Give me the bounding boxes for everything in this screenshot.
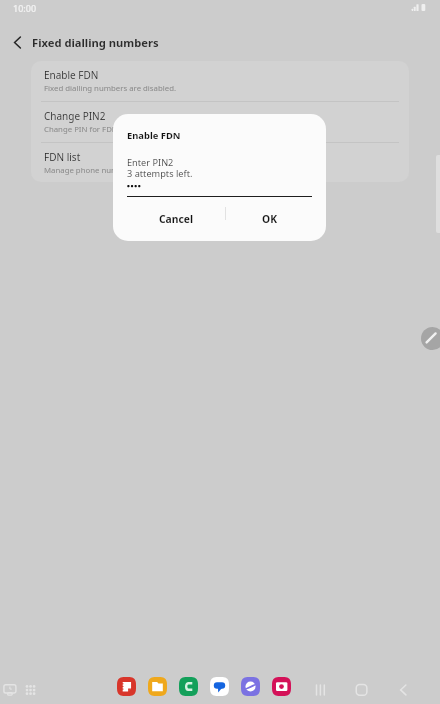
button[interactable]: Phone: [179, 677, 198, 696]
button[interactable]: Samsung Notes: [117, 677, 136, 696]
staticText: FDN list: [44, 150, 81, 164]
button[interactable]: Internet: [241, 677, 260, 696]
staticText: Manage phone numbers: [44, 165, 135, 176]
staticText: Enable FDN: [127, 129, 181, 142]
staticText: Enable FDN: [44, 68, 99, 82]
button[interactable]: Navigate up: [4, 29, 30, 55]
staticText: Change PIN for FDN: [44, 124, 118, 135]
button[interactable]: Recents: [2, 680, 18, 696]
button[interactable]: Home: [351, 680, 372, 701]
staticText: 10:00: [13, 2, 37, 14]
button[interactable]: Messages: [210, 677, 229, 696]
staticText: OK: [262, 212, 277, 226]
staticText: Cancel: [159, 212, 194, 226]
staticText: Fixed dialling numbers: [32, 35, 159, 50]
button[interactable]: Cancel: [113, 201, 225, 236]
staticText: Change PIN2: [44, 109, 106, 123]
button[interactable]: All apps: [23, 680, 39, 696]
button[interactable]: Back: [392, 680, 413, 701]
button[interactable]: S Pen: [421, 327, 440, 350]
button[interactable]: Recent apps: [310, 680, 330, 700]
staticText: Fixed dialling numbers are disabled.: [44, 83, 177, 94]
button[interactable]: Enable FDN: [31, 61, 409, 101]
button[interactable]: FDN list: [31, 143, 409, 182]
staticText: 3 attempts left.: [127, 167, 193, 180]
button[interactable]: Change PIN2: [31, 102, 409, 142]
button[interactable]: OK: [226, 201, 326, 236]
button[interactable]: My Files: [148, 677, 167, 696]
button[interactable]: Camera: [272, 677, 291, 696]
staticText: Enter PIN2: [127, 156, 174, 169]
